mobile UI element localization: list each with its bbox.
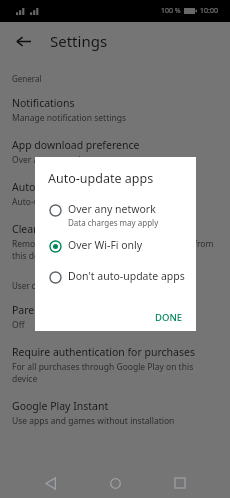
staticText: Notifications	[12, 96, 75, 110]
button[interactable]: App download preference	[0, 131, 230, 173]
staticText: Remove all the searches you have perform…	[12, 238, 218, 262]
button[interactable]: Home	[101, 469, 129, 497]
staticText: Auto-update apps over Wi-Fi only	[12, 196, 145, 208]
button[interactable]: Don't auto-update apps	[35, 266, 196, 288]
button[interactable]: Over Wi-Fi only	[35, 235, 196, 257]
button[interactable]: Clear local search history	[0, 215, 230, 269]
staticText: Use apps and games without installation	[12, 415, 175, 427]
staticText: For all purchases through Google Play on…	[12, 361, 218, 385]
button[interactable]: Notifications	[0, 89, 230, 131]
staticText: Off	[12, 319, 25, 331]
staticText: Auto-update apps	[48, 170, 154, 187]
staticText: Parental controls	[12, 303, 96, 317]
staticText: 10:00	[200, 6, 218, 16]
staticText: Don't auto-update apps	[68, 269, 185, 283]
staticText: Over any network	[12, 154, 84, 166]
staticText: DONE	[155, 311, 183, 324]
staticText: Over Wi-Fi only	[68, 238, 143, 252]
button[interactable]: Parental controls	[0, 296, 230, 338]
staticText: Data charges may apply	[68, 217, 159, 228]
button[interactable]: Google Play Instant	[0, 392, 230, 434]
staticText: App download preference	[12, 138, 140, 152]
button[interactable]: Recent apps	[166, 469, 194, 497]
button[interactable]: Require authentication for purchases	[0, 338, 230, 392]
button[interactable]: Auto-update apps	[0, 173, 230, 215]
staticText: General	[12, 73, 42, 84]
staticText: Require authentication for purchases	[12, 345, 195, 359]
staticText: Over any network	[68, 202, 156, 216]
staticText: Google Play Instant	[12, 399, 109, 413]
button[interactable]: Back	[6, 24, 40, 58]
staticText: Manage notification settings	[12, 112, 126, 124]
button[interactable]: DONE	[142, 304, 196, 331]
button[interactable]: Back	[37, 469, 65, 497]
staticText: Clear local search history	[12, 222, 135, 236]
staticText: 100 %	[161, 6, 181, 16]
staticText: User controls	[12, 280, 62, 291]
staticText: Settings	[50, 31, 108, 51]
staticText: Auto-update apps	[12, 180, 101, 194]
button[interactable]: Over any network	[35, 199, 196, 230]
